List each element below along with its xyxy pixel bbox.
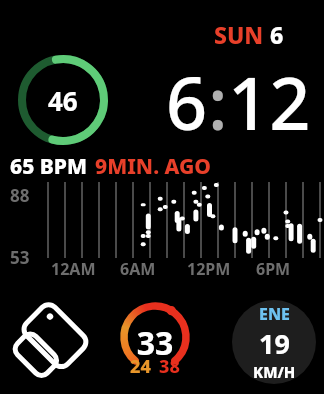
staticText: ENE — [259, 303, 290, 325]
staticText: 19 — [259, 325, 290, 362]
staticText: 38 — [159, 354, 180, 379]
staticText: KM/H — [253, 362, 296, 382]
staticText: 6 — [270, 19, 284, 50]
button[interactable]: Wallet — [8, 300, 92, 384]
staticText: 12PM — [187, 258, 231, 280]
staticText: 33 — [110, 321, 200, 365]
staticText: 12AM — [51, 258, 96, 280]
staticText: 65 BPM — [10, 152, 87, 181]
button[interactable]: 6 — [166, 53, 311, 151]
staticText: 12 — [228, 53, 311, 151]
button[interactable]: Heart rate chart — [0, 182, 324, 282]
button[interactable]: Activity ring 46 — [18, 55, 108, 145]
staticText: 6AM — [120, 258, 156, 280]
staticText: 6PM — [256, 258, 291, 280]
staticText: 88 — [10, 184, 30, 207]
button[interactable]: SUN — [214, 19, 284, 50]
button[interactable]: UV index 33 — [110, 300, 200, 390]
staticText: : — [208, 53, 228, 151]
button[interactable]: 65 BPM — [10, 152, 212, 181]
button[interactable]: Wind ENE 19 km/h — [232, 300, 316, 384]
staticText: 53 — [10, 246, 30, 269]
staticText: 46 — [48, 83, 78, 118]
staticText: 9MIN. AGO — [95, 152, 212, 181]
staticText: 24 — [130, 354, 151, 379]
staticText: 6 — [166, 53, 208, 151]
staticText: SUN — [214, 19, 264, 50]
